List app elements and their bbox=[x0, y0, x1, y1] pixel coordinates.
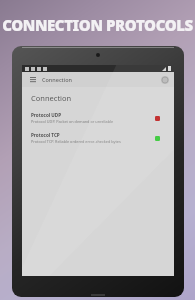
button[interactable]: Protocol UDP bbox=[22, 111, 174, 125]
staticText: CONNECTION PROTOCOLS bbox=[2, 15, 193, 35]
button[interactable]: Protocol TCP bbox=[22, 131, 174, 145]
button[interactable]: Account settings bbox=[159, 74, 170, 85]
button[interactable]: Toggle Protocol TCP bbox=[152, 133, 162, 143]
staticText: Protocol TCP bbox=[31, 132, 60, 138]
staticText: Connection bbox=[42, 76, 73, 83]
staticText: Protocol UDP bbox=[31, 112, 62, 118]
staticText: Protocol UDP. Packet on demand or unreli… bbox=[31, 119, 114, 124]
button[interactable]: Open navigation menu bbox=[27, 74, 38, 85]
button[interactable]: Toggle Protocol UDP bbox=[152, 113, 162, 123]
staticText: Connection bbox=[31, 93, 72, 103]
staticText: Protocol TCP. Reliable ordered error-che… bbox=[31, 139, 121, 144]
